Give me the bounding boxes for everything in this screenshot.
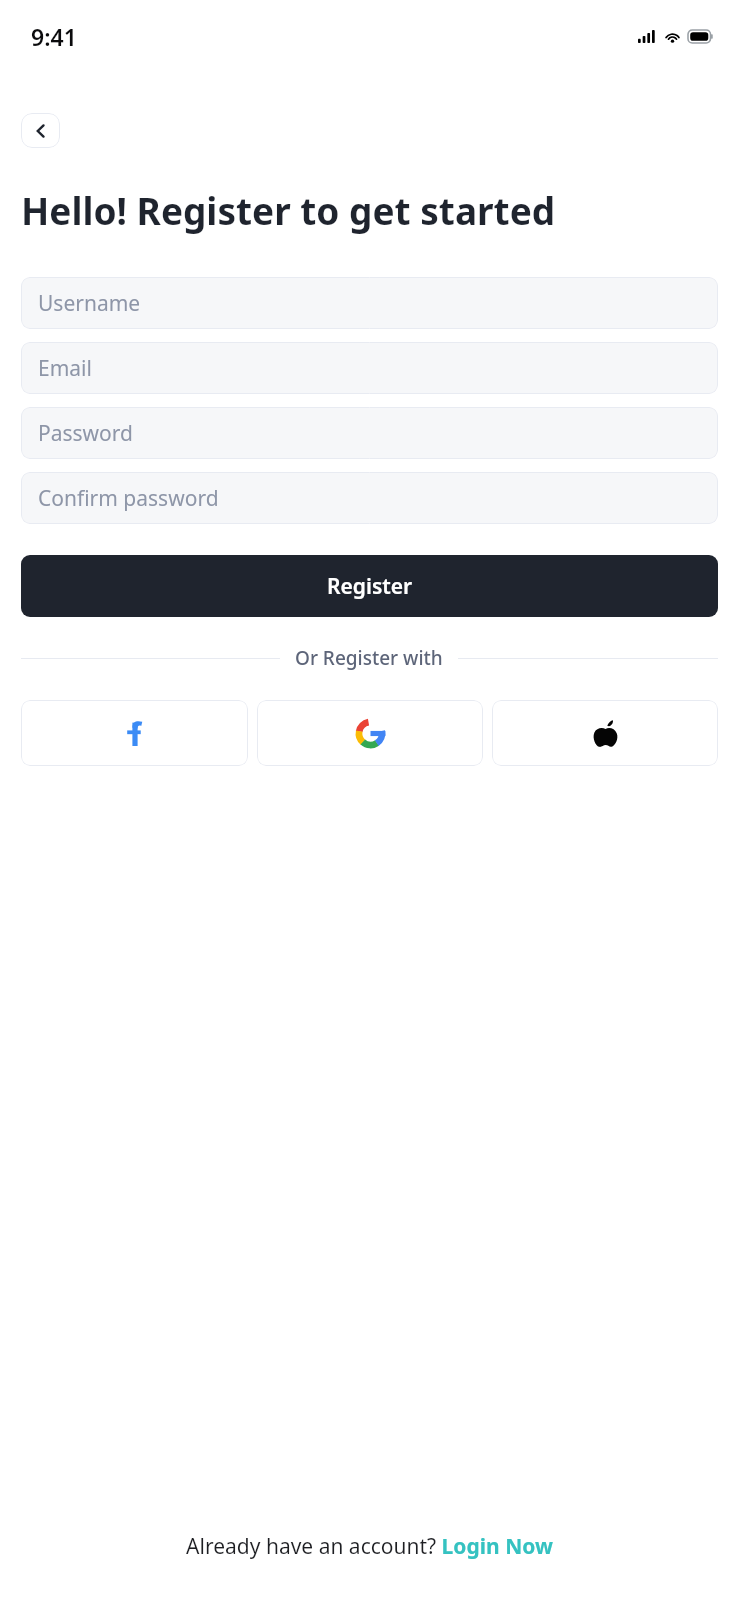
staticText: Hello! Register to get started — [21, 185, 669, 235]
staticText: Or Register with — [295, 645, 443, 671]
staticText: 9:41 — [31, 21, 77, 52]
staticText: Register — [327, 572, 413, 601]
staticText: Username — [38, 289, 141, 318]
button[interactable]: Username — [21, 277, 718, 329]
staticText: Email — [38, 354, 92, 383]
staticText: Confirm password — [38, 484, 219, 513]
button[interactable]: Register — [21, 555, 718, 617]
staticText: Password — [38, 419, 133, 448]
button[interactable]: Confirm password — [21, 472, 718, 524]
button[interactable]: Already have an account? Login Now — [0, 1532, 739, 1561]
button[interactable]: Sign up with Apple — [492, 700, 718, 766]
button[interactable]: Email — [21, 342, 718, 394]
button[interactable]: Password — [21, 407, 718, 459]
staticText: Already have an account? Login Now — [186, 1532, 553, 1561]
button[interactable]: Back — [21, 113, 60, 148]
button[interactable]: Sign up with Facebook — [21, 700, 248, 766]
button[interactable]: Sign up with Google — [257, 700, 483, 766]
